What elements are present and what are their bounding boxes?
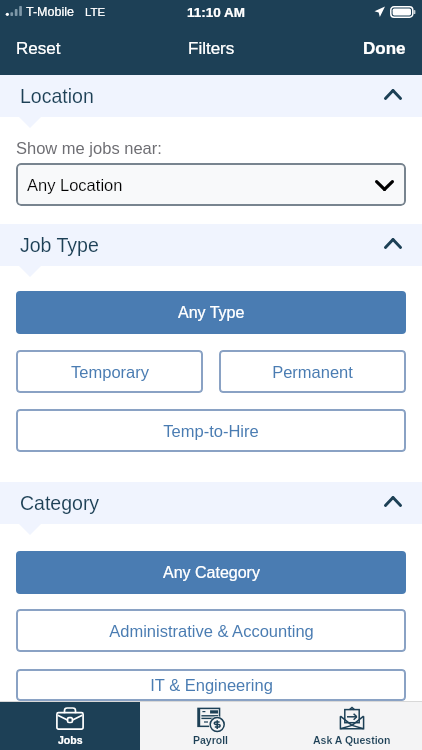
staticText: Reset: [16, 39, 61, 58]
staticText: Filters: [188, 39, 235, 58]
staticText: Job Type: [20, 234, 99, 256]
button[interactable]: Done: [347, 29, 422, 68]
staticText: Any Type: [178, 304, 245, 322]
button[interactable]: Category: [0, 482, 422, 524]
button[interactable]: IT & Engineering: [16, 669, 406, 701]
staticText: Location: [20, 85, 94, 107]
button[interactable]: Location: [0, 75, 422, 117]
staticText: Category: [20, 492, 100, 514]
staticText: T-Mobile: [26, 5, 74, 19]
staticText: Done: [363, 39, 406, 58]
staticText: Payroll: [193, 734, 229, 746]
staticText: Administrative & Accounting: [109, 622, 314, 640]
staticText: Any Location: [27, 176, 123, 194]
staticText: Show me jobs near:: [16, 139, 162, 157]
staticText: LTE: [85, 6, 106, 19]
staticText: IT & Engineering: [150, 676, 273, 694]
staticText: Permanent: [272, 363, 353, 381]
button[interactable]: Administrative & Accounting: [16, 609, 406, 652]
button[interactable]: Reset: [0, 29, 77, 68]
button[interactable]: Permanent: [219, 350, 406, 393]
staticText: 11:10 AM: [187, 5, 246, 20]
button[interactable]: Payroll: [140, 702, 281, 750]
button[interactable]: Any Type: [16, 291, 406, 334]
button[interactable]: Temporary: [16, 350, 203, 393]
staticText: Ask A Question: [313, 734, 391, 746]
button[interactable]: Temp-to-Hire: [16, 409, 406, 452]
button[interactable]: Ask A Question: [281, 702, 422, 750]
button[interactable]: Jobs: [0, 702, 140, 750]
staticText: Temporary: [71, 363, 149, 381]
staticText: Jobs: [58, 734, 83, 746]
button[interactable]: Any Category: [16, 551, 406, 594]
button[interactable]: Any Location: [16, 163, 406, 206]
button[interactable]: Job Type: [0, 224, 422, 266]
staticText: Temp-to-Hire: [163, 422, 259, 440]
staticText: Any Category: [163, 564, 260, 582]
